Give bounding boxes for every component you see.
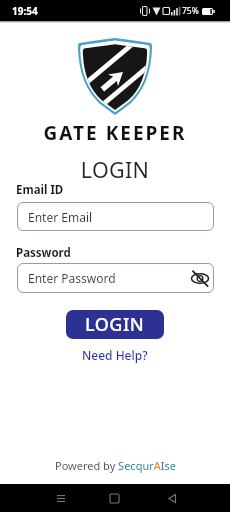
staticText: 75%: [182, 5, 199, 17]
button[interactable]: [106, 490, 122, 506]
staticText: Password: [16, 245, 71, 261]
staticText: GATE KEEPER: [0, 120, 230, 146]
button[interactable]: Enter Password: [17, 263, 214, 293]
staticText: Enter Email: [28, 209, 93, 225]
button[interactable]: Need Help?: [82, 347, 148, 363]
button[interactable]: [53, 490, 69, 506]
staticText: LOGIN: [85, 312, 145, 337]
button[interactable]: [191, 270, 209, 287]
button[interactable]: LOGIN: [66, 310, 164, 339]
button[interactable]: Enter Email: [17, 202, 214, 231]
staticText: 19:54: [12, 4, 38, 18]
staticText: Email ID: [16, 182, 64, 198]
button[interactable]: [164, 490, 180, 506]
staticText: Enter Password: [28, 270, 116, 286]
staticText: LOGIN: [0, 155, 230, 184]
staticText: Powered by SecqurAIse: [55, 458, 176, 473]
